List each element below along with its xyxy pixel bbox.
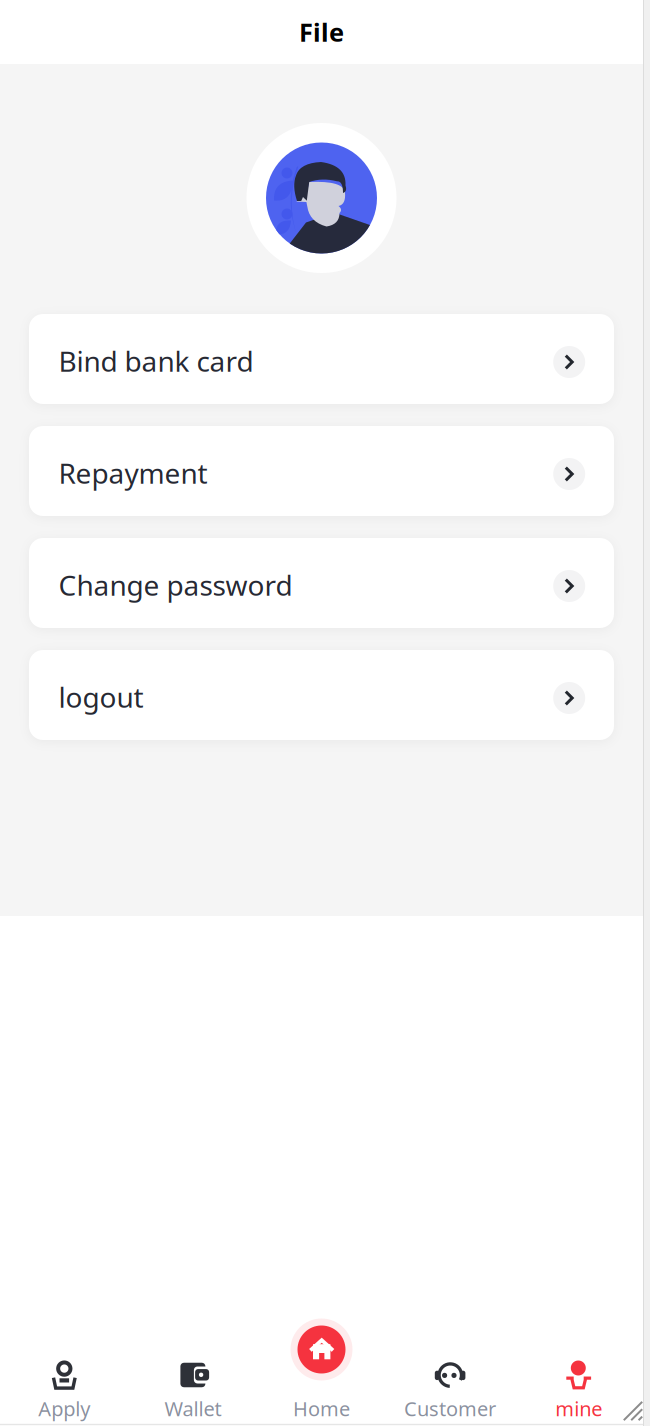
staticText: mine bbox=[555, 1395, 602, 1422]
button[interactable]: logout bbox=[29, 650, 614, 740]
staticText: Home bbox=[293, 1395, 350, 1422]
button[interactable]: mine bbox=[514, 1324, 643, 1426]
button[interactable]: Home bbox=[257, 1324, 386, 1426]
staticText: Repayment bbox=[58, 454, 207, 492]
staticText: Customer bbox=[404, 1395, 496, 1422]
button[interactable]: Customer bbox=[386, 1324, 514, 1426]
staticText: Bind bank card bbox=[58, 342, 253, 380]
staticText: File bbox=[299, 15, 344, 49]
button[interactable]: Apply bbox=[0, 1324, 129, 1426]
button[interactable]: Bind bank card bbox=[29, 314, 614, 404]
staticText: Change password bbox=[58, 566, 292, 604]
staticText: Apply bbox=[38, 1395, 90, 1422]
staticText: logout bbox=[58, 678, 143, 716]
button[interactable]: Wallet bbox=[129, 1324, 257, 1426]
button[interactable]: Change password bbox=[29, 538, 614, 628]
button[interactable]: Repayment bbox=[29, 426, 614, 516]
staticText: Wallet bbox=[164, 1395, 221, 1422]
